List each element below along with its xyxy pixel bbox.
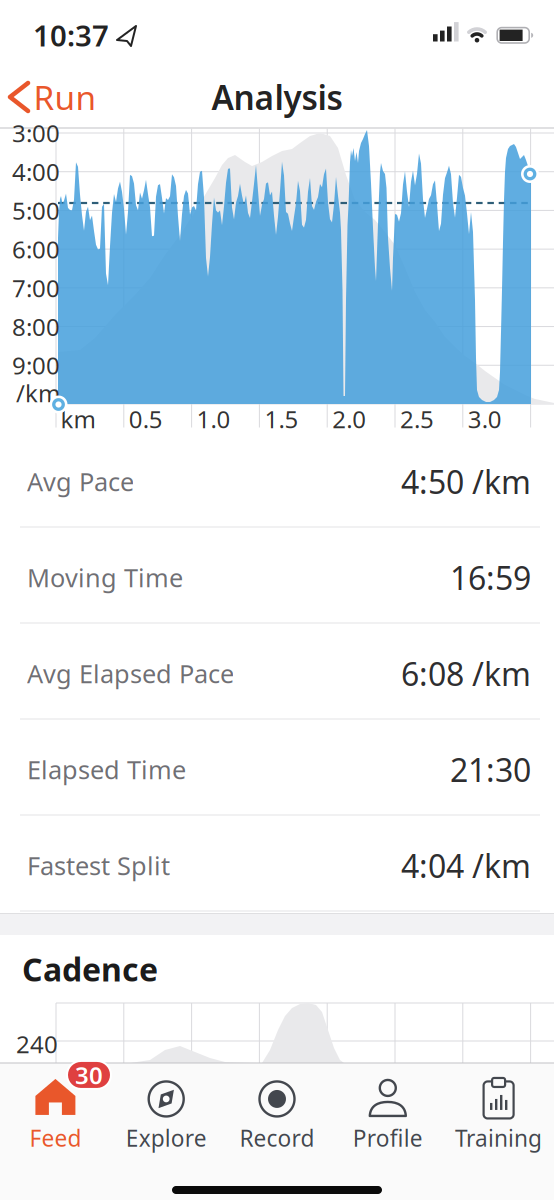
staticText: 4:50 /km	[401, 460, 531, 503]
staticText: Run	[33, 75, 96, 119]
staticText: Analysis	[211, 75, 342, 119]
staticText: km	[60, 403, 95, 435]
staticText: Moving Time	[27, 561, 183, 594]
staticText: Training	[455, 1123, 542, 1153]
staticText: Record	[239, 1123, 314, 1153]
staticText: 21:30	[450, 748, 531, 791]
staticText: /km	[16, 377, 60, 409]
staticText: 240	[16, 1028, 58, 1060]
staticText: Explore	[126, 1123, 207, 1153]
staticText: 1.5	[264, 403, 298, 435]
button[interactable]: Profile	[335, 1079, 441, 1153]
staticText: Fastest Split	[27, 849, 170, 882]
staticText: 3.0	[468, 403, 502, 435]
staticText: 6:00	[12, 233, 60, 265]
staticText: 1.0	[197, 403, 231, 435]
staticText: 30	[75, 1059, 103, 1091]
staticText: Cadence	[22, 948, 158, 990]
staticText: 4:00	[12, 156, 60, 188]
staticText: 9:00	[12, 349, 60, 381]
staticText: 8:00	[12, 311, 60, 343]
staticText: 7:00	[12, 272, 60, 304]
staticText: 5:00	[12, 194, 60, 226]
button[interactable]: 30	[2, 1079, 108, 1153]
staticText: 0.5	[129, 403, 163, 435]
staticText: 4:04 /km	[401, 844, 531, 887]
staticText: 2.5	[400, 403, 434, 435]
staticText: Avg Pace	[27, 465, 134, 498]
button[interactable]: Record	[224, 1079, 330, 1153]
button[interactable]: Training	[446, 1079, 552, 1153]
staticText: Avg Elapsed Pace	[27, 657, 234, 690]
staticText: Profile	[353, 1123, 423, 1153]
staticText: Feed	[29, 1123, 81, 1153]
staticText: 2.0	[332, 403, 366, 435]
staticText: 6:08 /km	[401, 652, 531, 695]
staticText: Elapsed Time	[27, 753, 186, 786]
staticText: 16:59	[450, 556, 531, 599]
staticText: 10:37	[33, 15, 109, 54]
button[interactable]: Explore	[113, 1079, 219, 1153]
button[interactable]: Back	[7, 81, 97, 113]
staticText: 3:00	[12, 117, 60, 149]
